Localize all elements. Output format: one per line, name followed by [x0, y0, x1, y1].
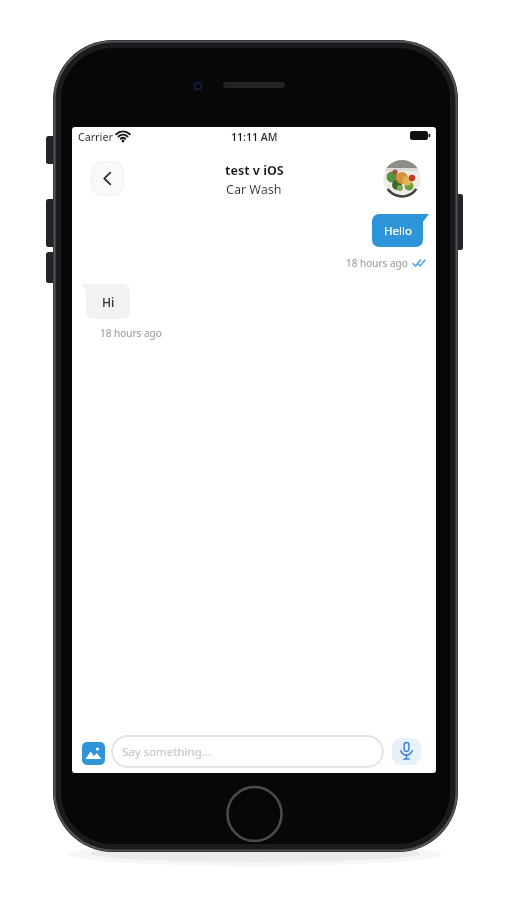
staticText: Say something... [122, 744, 211, 760]
staticText: Hello [384, 223, 412, 239]
staticText: 18 hours ago [346, 256, 408, 270]
staticText: Carrier [78, 130, 113, 144]
staticText: Car Wash [226, 181, 282, 198]
button[interactable] [91, 161, 124, 196]
button[interactable]: Say something... [111, 735, 384, 768]
staticText: Hi [102, 294, 115, 310]
button[interactable]: Hi [86, 284, 130, 319]
button[interactable] [82, 742, 105, 765]
button[interactable]: Hello [372, 214, 423, 247]
staticText: 11:11 AM [231, 130, 278, 144]
staticText: 18 hours ago [100, 326, 162, 340]
button[interactable] [392, 738, 421, 765]
staticText: test v iOS [225, 162, 284, 179]
button[interactable] [383, 160, 421, 198]
